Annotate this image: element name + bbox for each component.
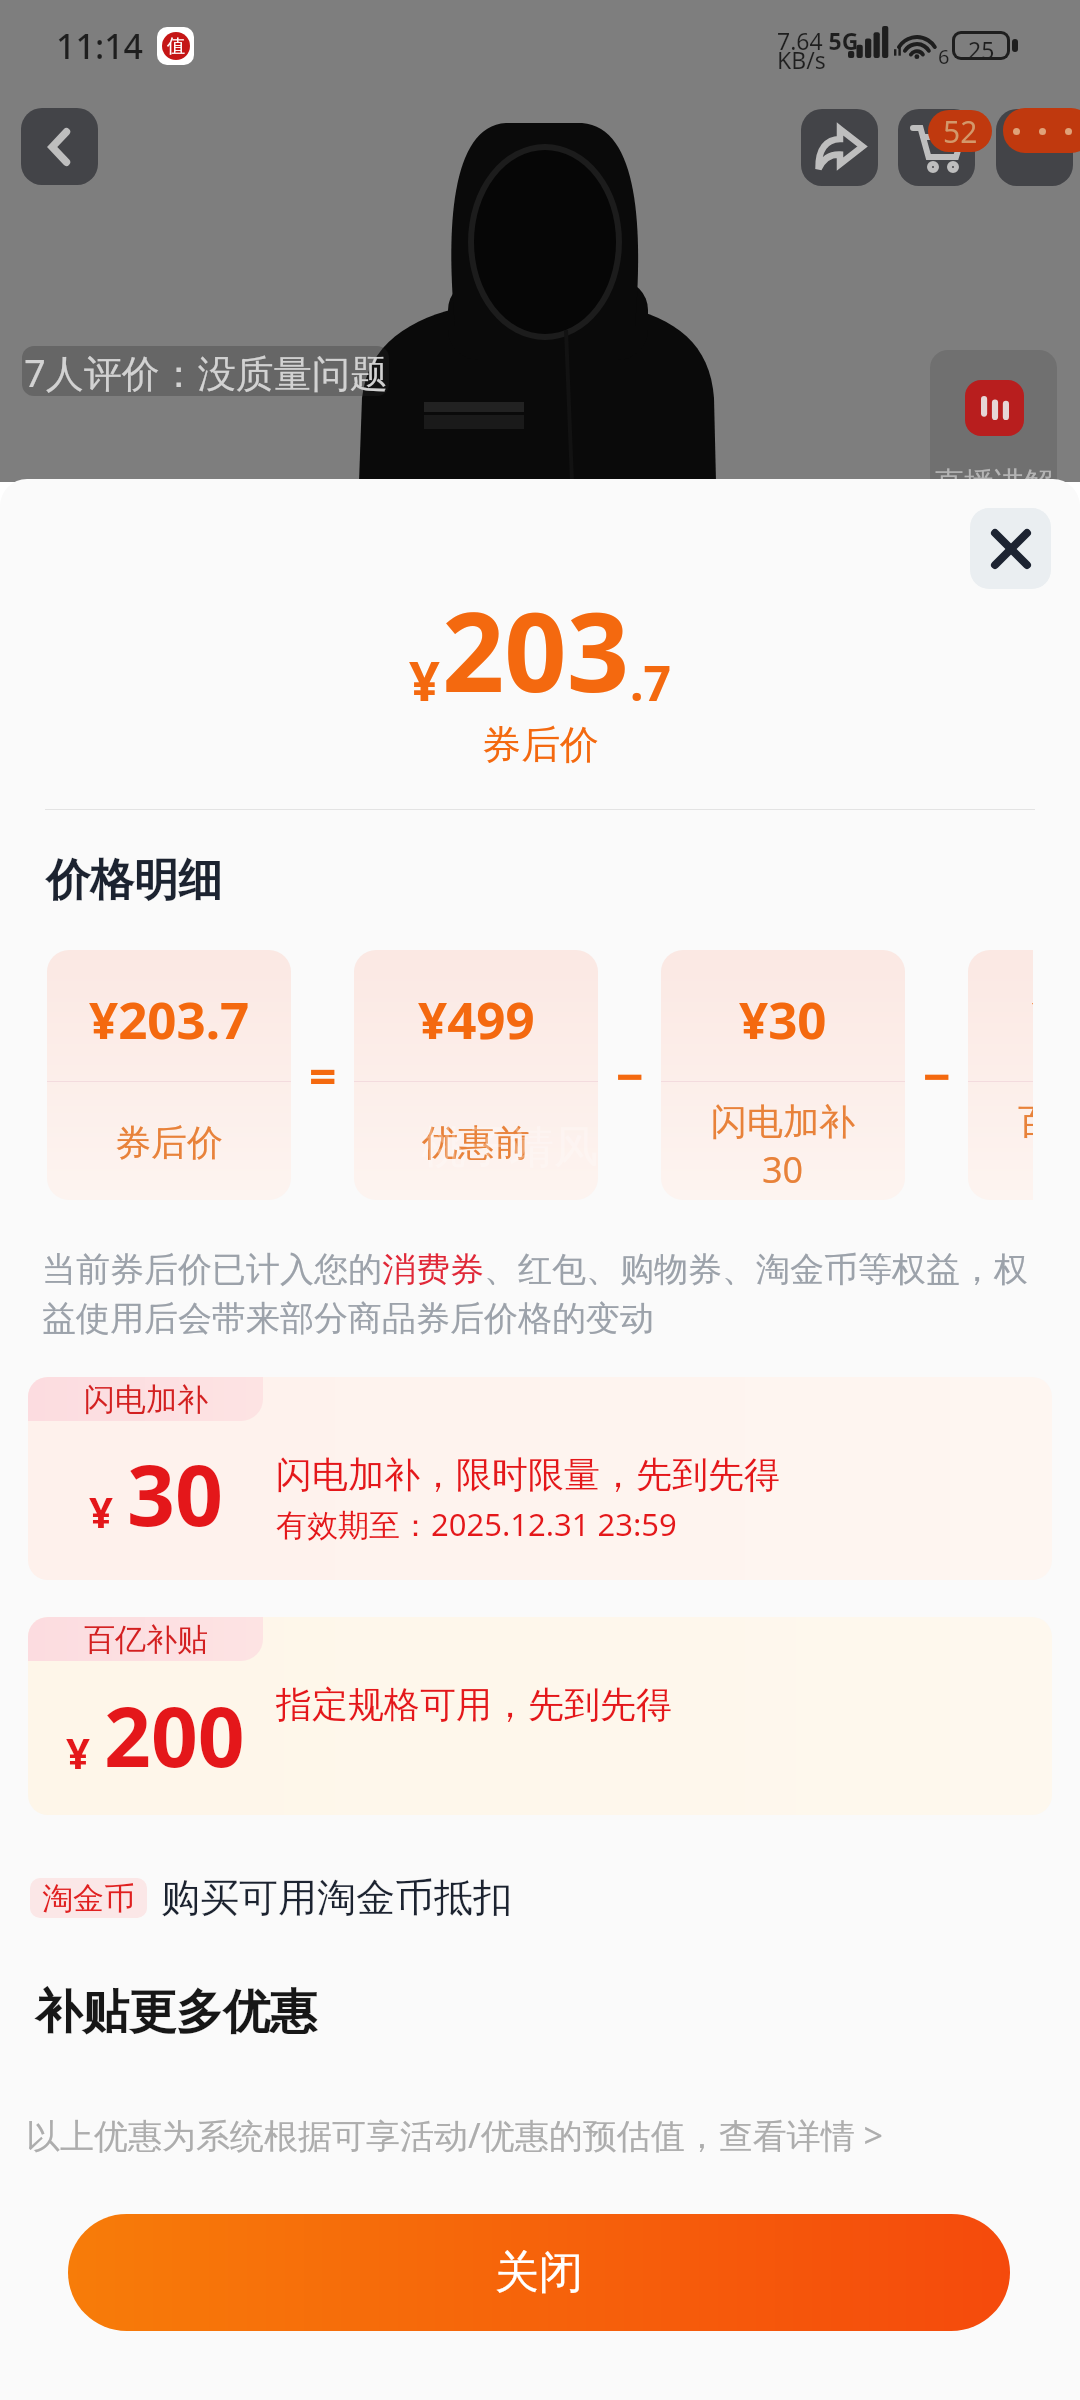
button[interactable]: ¥203.7 (47, 950, 291, 1200)
button[interactable]: Back (21, 108, 98, 185)
staticText: KB/s (777, 44, 826, 75)
staticText: ¥ (409, 643, 440, 717)
staticText: 7人评价：没质量问题 (24, 346, 388, 396)
staticText: 淘金币 (42, 1879, 135, 1918)
staticText: 购买可用淘金币抵扣 (161, 1873, 512, 1922)
button[interactable] (28, 1377, 1052, 1580)
staticText: 值 (167, 35, 185, 58)
staticText: 关闭 (495, 2245, 583, 2300)
staticText: 203 (442, 575, 630, 723)
staticText: ¥200 (1032, 984, 1033, 1053)
staticText: 52 (943, 111, 978, 152)
staticText: ¥ (66, 1724, 91, 1781)
staticText: .7 (630, 650, 671, 715)
button[interactable]: ¥30 (661, 950, 905, 1200)
staticText: ¥30 (739, 984, 827, 1053)
staticText: ¥203.7 (89, 984, 250, 1053)
staticText: 券后价 (115, 1120, 223, 1165)
button[interactable] (28, 1617, 1052, 1815)
staticText: 直播讲解 (934, 464, 1054, 502)
staticText: 有效期至：2025.12.31 23:59 (276, 1503, 677, 1545)
button[interactable]: 7人评价：没质量问题 (22, 346, 389, 396)
staticText: 闪电加补，限时限量，先到先得 (276, 1452, 780, 1497)
staticText: 30 (127, 1436, 224, 1550)
staticText: 7.64 5G (777, 25, 859, 56)
staticText: 30 (762, 1145, 804, 1194)
staticText: 25 (968, 34, 995, 57)
staticText: 券后价 (482, 720, 599, 769)
button[interactable]: 以上优惠为系统根据可享活动/优惠的预估值，查看详情 > (26, 2112, 883, 2158)
button[interactable]: 淘金币 (42, 1878, 135, 1918)
staticText: ¥ (89, 1483, 114, 1540)
button[interactable]: Cart (898, 109, 975, 186)
staticText: 百亿补贴 (84, 1620, 208, 1659)
button[interactable]: ¥200 (968, 950, 1033, 1200)
staticText: 百亿补贴 (1018, 1099, 1033, 1144)
staticText: 11:14 (56, 23, 144, 69)
staticText: 200 (104, 1679, 245, 1791)
button[interactable]: Live stream (930, 350, 1057, 510)
staticText: 闪电加补 (84, 1380, 208, 1419)
button[interactable]: Share (801, 109, 878, 186)
staticText: 6 (938, 43, 950, 70)
staticText: − (923, 1043, 951, 1108)
button[interactable]: Close (970, 508, 1051, 589)
staticText: 闪电加补 (711, 1099, 855, 1144)
button[interactable]: More options (996, 109, 1073, 186)
staticText: = (309, 1043, 337, 1108)
staticText: 优惠前 (422, 1120, 530, 1165)
staticText: 桃子靖风 (422, 1120, 598, 1175)
staticText: 指定规格可用，先到先得 (276, 1682, 672, 1727)
staticText: 价格明细 (46, 853, 222, 908)
button[interactable]: 关闭 (68, 2214, 1010, 2331)
staticText: ¥499 (418, 984, 535, 1053)
staticText: − (616, 1043, 644, 1108)
staticText: 当前券后价已计入您的消费券、红包、购物券、淘金币等权益，权益使用后会带来部分商品… (42, 1248, 1042, 1340)
button[interactable]: ¥499 (354, 950, 598, 1200)
staticText: 补贴更多优惠 (35, 1983, 317, 2042)
